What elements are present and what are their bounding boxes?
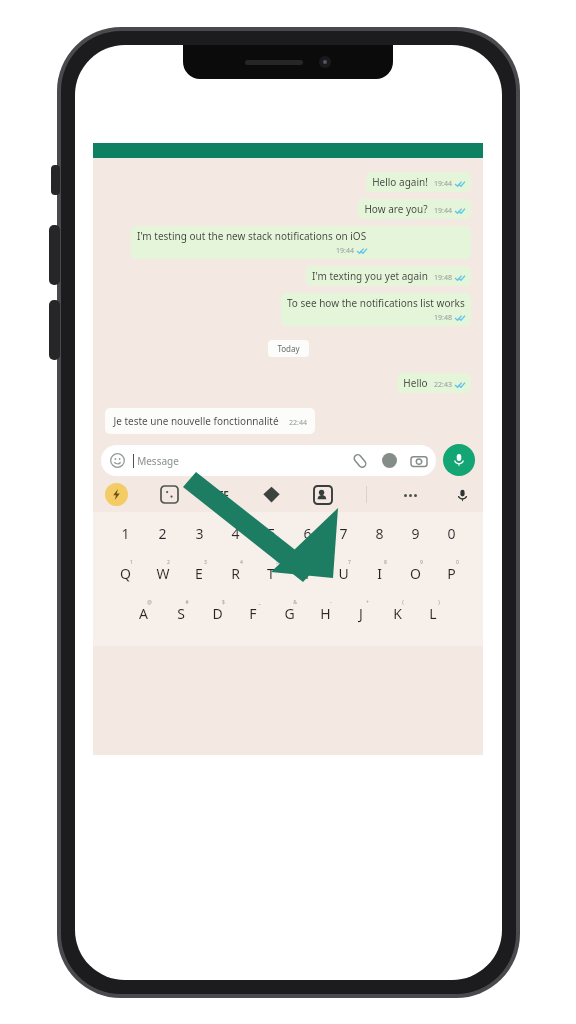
button[interactable]: 3 (181, 522, 217, 544)
button[interactable]: ) (415, 602, 451, 624)
staticText: A (139, 604, 148, 623)
button[interactable]: More (401, 486, 419, 504)
button[interactable]: 2 (144, 562, 181, 584)
staticText: 1 (130, 559, 133, 566)
button[interactable]: 1 (107, 562, 144, 584)
button[interactable]: 6 (289, 562, 325, 584)
button[interactable]: Avatar sticker (314, 486, 332, 504)
button[interactable]: Je teste une nouvelle fonctionnalité (105, 408, 315, 434)
button[interactable]: Attach file (352, 453, 368, 469)
button[interactable]: Emoji (101, 445, 436, 476)
button[interactable]: Camera (411, 453, 427, 469)
staticText: 3 (195, 524, 204, 543)
button[interactable]: & (271, 602, 307, 624)
button[interactable]: 9 (397, 522, 433, 544)
staticText: 19:48 (434, 313, 452, 323)
staticText: To see how the notifications list works (287, 296, 465, 310)
other: Volume down (49, 300, 60, 360)
staticText: Hello again! (372, 175, 428, 189)
staticText: Y (303, 564, 311, 583)
staticText: K (393, 604, 402, 623)
staticText: D (212, 604, 223, 623)
button[interactable]: 0 (433, 522, 469, 544)
button[interactable]: Hello (397, 373, 471, 393)
button[interactable]: I'm texting you yet again (306, 266, 471, 286)
staticText: 22:43 (434, 380, 452, 390)
staticText: Today (277, 343, 300, 354)
staticText: 8 (384, 559, 387, 566)
staticText: S (177, 604, 185, 623)
staticText: GIF (212, 488, 229, 502)
staticText: T (267, 564, 275, 583)
button[interactable]: GIF (212, 488, 229, 502)
staticText: 22:44 (289, 418, 307, 428)
button[interactable]: 4 (217, 562, 253, 584)
other: Volume up (49, 225, 60, 285)
button[interactable]: 7 (325, 522, 361, 544)
staticText: 5 (276, 559, 279, 566)
staticText: Hello (403, 376, 428, 390)
staticText: 3 (204, 559, 207, 566)
button[interactable]: Today (268, 340, 309, 357)
staticText: 4 (240, 559, 243, 566)
button[interactable]: Quick reply (105, 483, 128, 506)
staticText: # (185, 599, 189, 606)
button[interactable]: 8 (361, 522, 397, 544)
button[interactable]: I'm testing out the new stack notificati… (131, 226, 471, 259)
staticText: P (447, 564, 456, 583)
staticText: I'm texting you yet again (312, 269, 428, 283)
staticText: 19:44 (434, 179, 452, 189)
button[interactable]: To see how the notifications list works (281, 293, 471, 326)
staticText: 0 (456, 559, 459, 566)
button[interactable]: @ (125, 602, 162, 624)
staticText: How are you? (364, 202, 428, 216)
button[interactable]: _ (235, 602, 271, 624)
staticText: O (410, 564, 421, 583)
staticText: 4 (231, 524, 240, 543)
button[interactable]: 1 (107, 522, 144, 544)
staticText: 2 (158, 524, 167, 543)
button[interactable]: 5 (253, 522, 289, 544)
button[interactable]: 6 (289, 522, 325, 544)
button[interactable]: Voice typing (453, 486, 471, 504)
button[interactable]: Payments (382, 453, 397, 468)
staticText: 19:48 (434, 273, 452, 283)
button[interactable]: - (307, 602, 343, 624)
staticText: U (338, 564, 349, 583)
staticText: W (156, 564, 170, 583)
staticText: I'm testing out the new stack notificati… (137, 229, 367, 243)
button[interactable]: $ (199, 602, 235, 624)
button[interactable]: How are you? (358, 199, 471, 219)
staticText: I (377, 564, 382, 583)
staticText: 7 (348, 559, 351, 566)
button[interactable]: 0 (433, 562, 469, 584)
button[interactable]: + (343, 602, 379, 624)
other: Emoji (110, 453, 125, 468)
staticText: E (195, 564, 203, 583)
button[interactable]: 3 (181, 562, 217, 584)
staticText: ) (438, 599, 440, 606)
button[interactable]: 8 (361, 562, 397, 584)
button[interactable]: 5 (253, 562, 289, 584)
button[interactable]: Stickers (161, 486, 178, 503)
button[interactable]: Emoji search (263, 486, 280, 503)
staticText: 2 (167, 559, 170, 566)
staticText: 5 (267, 524, 276, 543)
button[interactable]: Hello again! (366, 172, 471, 192)
button[interactable]: 9 (397, 562, 433, 584)
staticText: 9 (420, 559, 423, 566)
staticText: 6 (303, 524, 312, 543)
staticText: + (366, 599, 369, 606)
staticText: J (359, 604, 363, 623)
button[interactable]: # (162, 602, 199, 624)
button[interactable]: Record voice message (443, 444, 475, 476)
staticText: Je teste une nouvelle fonctionnalité (113, 414, 279, 428)
staticText: G (284, 604, 295, 623)
button[interactable]: 4 (217, 522, 253, 544)
staticText: ( (402, 599, 404, 606)
button[interactable]: 7 (325, 562, 361, 584)
staticText: Q (120, 564, 131, 583)
button[interactable]: 2 (144, 522, 181, 544)
button[interactable]: ( (379, 602, 415, 624)
staticText: 0 (447, 524, 456, 543)
